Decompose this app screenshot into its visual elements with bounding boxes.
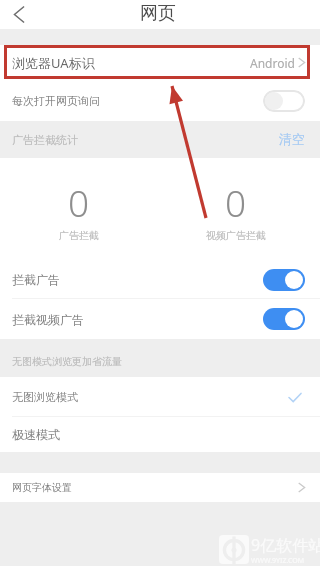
staticText: Android: [250, 55, 295, 71]
button[interactable]: 极速模式: [0, 417, 320, 452]
staticText: 拦截视频广告: [12, 312, 84, 327]
button[interactable]: 拦截视频广告: [0, 299, 320, 339]
button[interactable]: 0: [157, 159, 314, 260]
button[interactable]: Switch on: [263, 269, 305, 291]
staticText: 无图浏览模式: [12, 390, 78, 404]
staticText: 网页: [140, 2, 176, 25]
staticText: 9亿软件站: [251, 534, 320, 556]
button[interactable]: Switch on: [263, 308, 305, 330]
staticText: 每次打开网页询问: [12, 94, 100, 108]
button[interactable]: 0: [0, 159, 157, 260]
staticText: 视频广告拦截: [206, 229, 266, 242]
button[interactable]: 每次打开网页询问: [0, 80, 320, 121]
button[interactable]: 清空: [279, 131, 305, 147]
staticText: WWW.9YIZ.COM: [251, 556, 305, 566]
staticText: 拦截广告: [12, 272, 60, 287]
staticText: 广告拦截: [59, 229, 99, 242]
button[interactable]: 拦截广告: [0, 260, 320, 299]
button[interactable]: 无图浏览模式: [0, 377, 320, 417]
staticText: 浏览器UA标识: [12, 54, 95, 72]
staticText: 广告拦截统计: [12, 133, 78, 147]
button[interactable]: Back: [0, 0, 38, 29]
button[interactable]: 网页字体设置: [0, 473, 320, 502]
staticText: 网页字体设置: [12, 481, 72, 494]
staticText: 清空: [279, 131, 305, 147]
staticText: 无图模式浏览更加省流量: [12, 355, 122, 368]
button[interactable]: 浏览器UA标识: [0, 45, 320, 80]
button[interactable]: Switch off: [263, 90, 305, 112]
staticText: 0: [68, 177, 90, 227]
staticText: 0: [225, 177, 247, 227]
staticText: 极速模式: [12, 427, 60, 442]
